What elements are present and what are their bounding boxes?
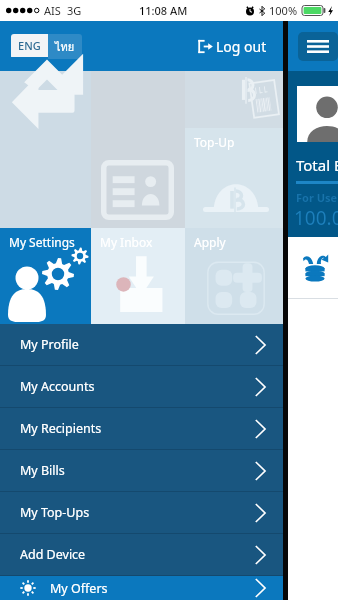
staticText: My Top-Ups xyxy=(20,504,90,521)
button[interactable]: ไทย xyxy=(48,34,82,59)
button[interactable]: My Profile xyxy=(0,324,283,365)
button[interactable] xyxy=(0,71,91,228)
staticText: ไทย xyxy=(55,38,75,55)
button[interactable]: Add Device xyxy=(0,534,283,575)
staticText: My Offers xyxy=(50,580,108,597)
button[interactable]: My Offers xyxy=(0,576,283,600)
button[interactable]: My Inbox xyxy=(91,228,185,324)
staticText: My Bills xyxy=(20,462,65,479)
button[interactable]: My Accounts xyxy=(0,366,283,407)
button[interactable]: ENG xyxy=(11,34,48,57)
staticText: For Use xyxy=(296,190,338,205)
staticText: Top-Up xyxy=(194,134,235,150)
staticText: My Settings xyxy=(9,234,75,250)
staticText: My Recipients xyxy=(20,420,102,437)
button[interactable]: Top-Up xyxy=(185,128,283,228)
button[interactable]: Apply xyxy=(185,228,283,324)
button[interactable]: Log out xyxy=(194,31,271,62)
staticText: 11:08 AM xyxy=(139,3,188,18)
staticText: ENG xyxy=(18,38,41,53)
button[interactable] xyxy=(91,71,185,228)
button[interactable]: My Settings xyxy=(0,228,91,324)
button[interactable]: Menu xyxy=(298,32,338,61)
staticText: 100.0 xyxy=(294,205,338,231)
staticText: 100% xyxy=(269,3,298,18)
button[interactable] xyxy=(185,71,283,128)
staticText: My Profile xyxy=(20,336,79,353)
staticText: My Inbox xyxy=(100,234,153,250)
staticText: Log out xyxy=(216,37,267,56)
staticText: AIS xyxy=(44,3,61,18)
button[interactable]: My Recipients xyxy=(0,408,283,449)
staticText: Apply xyxy=(194,234,226,250)
staticText: Total B xyxy=(296,155,338,175)
staticText: Add Device xyxy=(20,546,86,563)
button[interactable]: My Bills xyxy=(0,450,283,491)
staticText: 3G xyxy=(67,3,82,18)
staticText: My Accounts xyxy=(20,378,95,395)
button[interactable]: My Top-Ups xyxy=(0,492,283,533)
